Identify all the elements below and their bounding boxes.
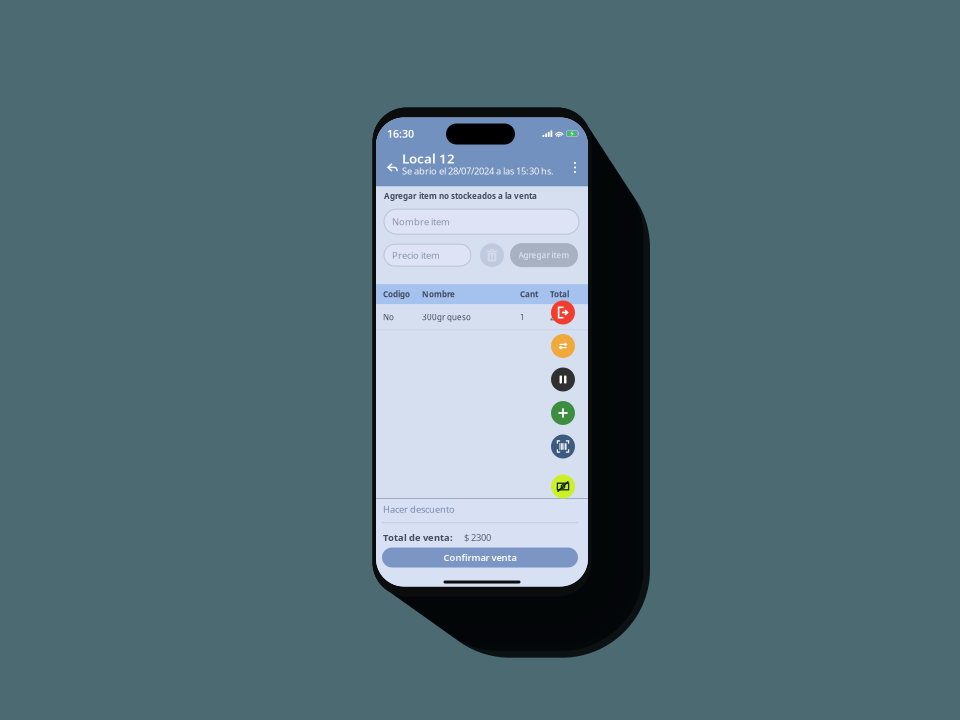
staticText: Precio item — [392, 249, 440, 261]
button[interactable]: Cerrar caja — [551, 300, 575, 324]
staticText: Cant — [520, 289, 538, 299]
button[interactable]: More options — [567, 154, 583, 180]
staticText: Total — [550, 289, 569, 299]
staticText: Confirmar venta — [443, 551, 516, 564]
staticText: 16:30 — [387, 126, 414, 141]
staticText: Nombre item — [392, 215, 450, 228]
button[interactable]: Transferir — [551, 334, 575, 358]
staticText: Codigo — [383, 289, 410, 299]
button[interactable]: Borrar — [480, 243, 504, 267]
staticText: $ 2300 — [464, 531, 491, 543]
staticText: No — [383, 312, 394, 322]
button[interactable]: Pausar venta — [551, 367, 575, 391]
staticText: Agregar item — [518, 250, 569, 260]
button[interactable]: Agregar item — [510, 243, 578, 267]
button[interactable]: Back — [380, 152, 405, 182]
staticText: 1 — [520, 312, 525, 322]
staticText: Total de venta: — [383, 531, 453, 543]
staticText: Se abrio el 28/07/2024 a las 15:30 hs. — [402, 165, 554, 177]
button[interactable]: Confirmar venta — [382, 547, 578, 567]
staticText: Nombre — [422, 289, 455, 299]
button[interactable]: Hacer descuento — [376, 499, 588, 523]
button[interactable]: Escanear codigo — [551, 434, 575, 458]
staticText: Hacer descuento — [383, 503, 455, 515]
staticText: Agregar item no stockeados a la venta — [384, 190, 537, 201]
button[interactable]: Venta sin dinero — [551, 474, 575, 498]
button[interactable]: Agregar item — [551, 401, 575, 425]
staticText: 2300 — [550, 312, 570, 322]
staticText: Local 12 — [402, 149, 455, 167]
staticText: 300gr queso — [422, 312, 471, 322]
